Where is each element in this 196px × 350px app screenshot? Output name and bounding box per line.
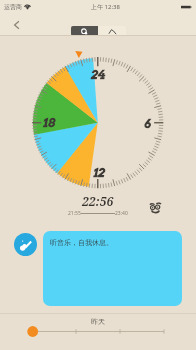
staticText: 22:56 xyxy=(82,193,114,209)
staticText: 12 xyxy=(93,165,105,179)
staticText: 24 xyxy=(91,67,105,81)
button[interactable]: Back xyxy=(8,16,26,34)
button[interactable]: Chart view xyxy=(98,26,126,36)
staticText: 运营商 xyxy=(4,3,22,11)
staticText: 23:40 xyxy=(115,210,128,217)
button[interactable]: Mood xyxy=(148,198,164,214)
button[interactable]: Music xyxy=(14,233,37,256)
staticText: 21:55 xyxy=(68,210,81,217)
staticText: 18 xyxy=(43,115,55,129)
staticText: 6 xyxy=(144,116,151,130)
button[interactable]: Clock view xyxy=(71,26,98,36)
staticText: 上午 12:38 xyxy=(91,3,120,11)
staticText: 昨天 xyxy=(91,317,105,326)
staticText: 听音乐，自我休息。 xyxy=(50,238,113,247)
button[interactable]: 听音乐，自我休息。 xyxy=(43,231,182,306)
